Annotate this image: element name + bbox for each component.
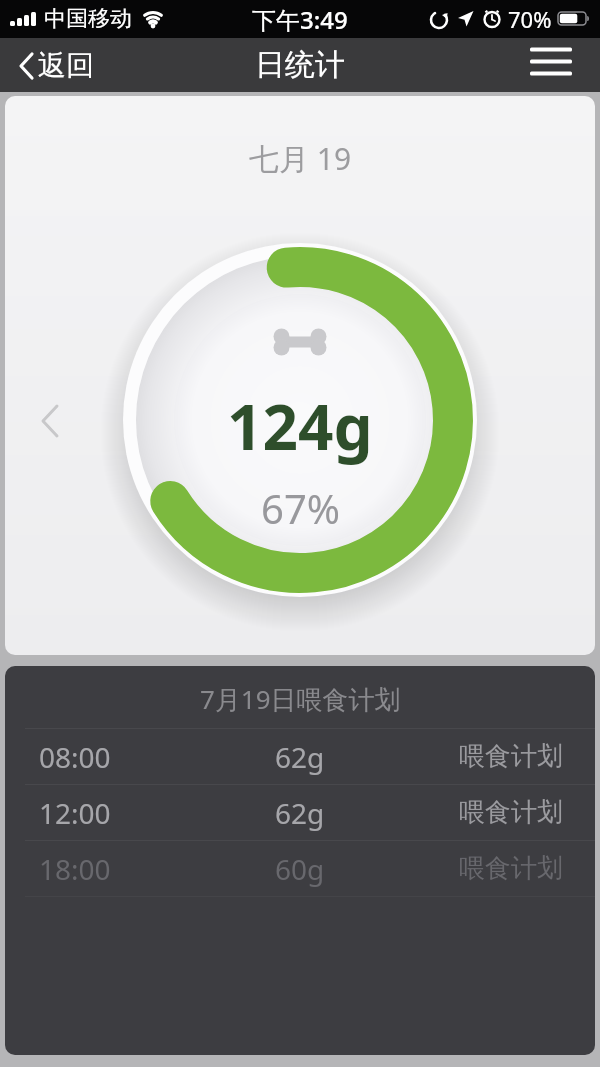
staticText: 60g [275,850,325,888]
button[interactable]: 08:00 [5,729,595,784]
staticText: 62g [275,738,325,776]
staticText: 喂食计划 [459,740,563,773]
button[interactable]: 返回 [18,48,94,83]
staticText: 喂食计划 [459,852,563,885]
staticText: 08:00 [39,738,111,776]
button[interactable] [530,44,572,78]
staticText: 中国移动 [44,5,132,33]
staticText: 返回 [38,48,94,83]
staticText: 124g [227,384,373,468]
staticText: 下午3:49 [252,3,348,36]
button[interactable]: 12:00 [5,785,595,840]
staticText: 七月 19 [249,138,352,179]
staticText: 喂食计划 [459,796,563,829]
staticText: 67% [261,481,340,535]
staticText: 12:00 [39,794,111,832]
staticText: 70% [508,4,552,34]
button[interactable] [33,393,69,449]
staticText: 日统计 [255,46,345,84]
staticText: 18:00 [39,850,111,888]
staticText: 7月19日喂食计划 [200,681,401,717]
button[interactable]: 18:00 [5,841,595,896]
staticText: 62g [275,794,325,832]
